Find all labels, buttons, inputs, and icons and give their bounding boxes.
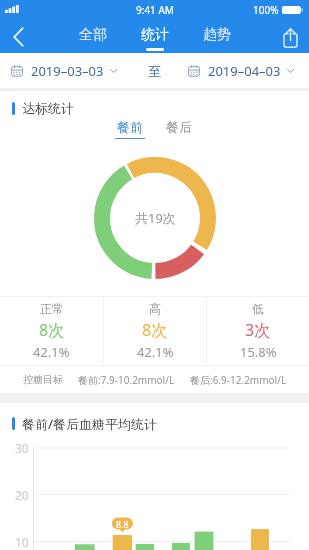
staticText: 至: [148, 63, 161, 79]
staticText: 20: [15, 487, 29, 501]
staticText: 9:41 AM: [136, 3, 174, 17]
button[interactable]: 统计: [141, 26, 169, 51]
button[interactable]: Back: [0, 21, 37, 52]
button[interactable]: 2019–04–03: [188, 62, 294, 80]
staticText: 正常: [40, 301, 64, 316]
staticText: 全部: [79, 26, 107, 44]
staticText: 8.8: [116, 518, 129, 530]
button[interactable]: 餐前: [115, 119, 145, 139]
staticText: 30: [15, 440, 29, 454]
staticText: 2019–03–03: [31, 62, 104, 80]
staticText: 10: [15, 534, 29, 548]
staticText: 餐前/餐后血糖平均统计: [22, 415, 158, 433]
staticText: 8次: [39, 319, 65, 341]
staticText: 共19次: [135, 209, 176, 227]
staticText: 餐后: [166, 119, 192, 135]
staticText: 42.1%: [33, 343, 70, 361]
staticText: 餐后:6.9-12.2mmol/L: [190, 373, 287, 387]
button[interactable]: 正常: [0, 297, 103, 365]
staticText: 餐前:7.9-10.2mmol/L: [78, 373, 175, 387]
staticText: 低: [252, 301, 264, 316]
staticText: 8次: [142, 319, 168, 341]
staticText: 3次: [245, 319, 271, 341]
staticText: 高: [149, 301, 161, 316]
staticText: 达标统计: [22, 100, 74, 116]
button[interactable]: 2019–03–03: [11, 62, 117, 80]
staticText: 餐前: [117, 119, 143, 135]
staticText: 控糖目标: [23, 373, 63, 386]
staticText: 统计: [141, 26, 169, 44]
button[interactable]: 低: [207, 297, 309, 365]
staticText: 15.8%: [240, 343, 277, 361]
staticText: 42.1%: [137, 343, 174, 361]
staticText: 2019–04–03: [208, 62, 281, 80]
button[interactable]: 高: [104, 297, 206, 365]
staticText: 100%: [253, 3, 279, 17]
button[interactable]: Share: [272, 22, 309, 53]
button[interactable]: 餐后: [164, 119, 194, 139]
staticText: 趋势: [203, 26, 231, 44]
button[interactable]: 全部: [79, 26, 107, 51]
button[interactable]: 趋势: [203, 26, 231, 51]
